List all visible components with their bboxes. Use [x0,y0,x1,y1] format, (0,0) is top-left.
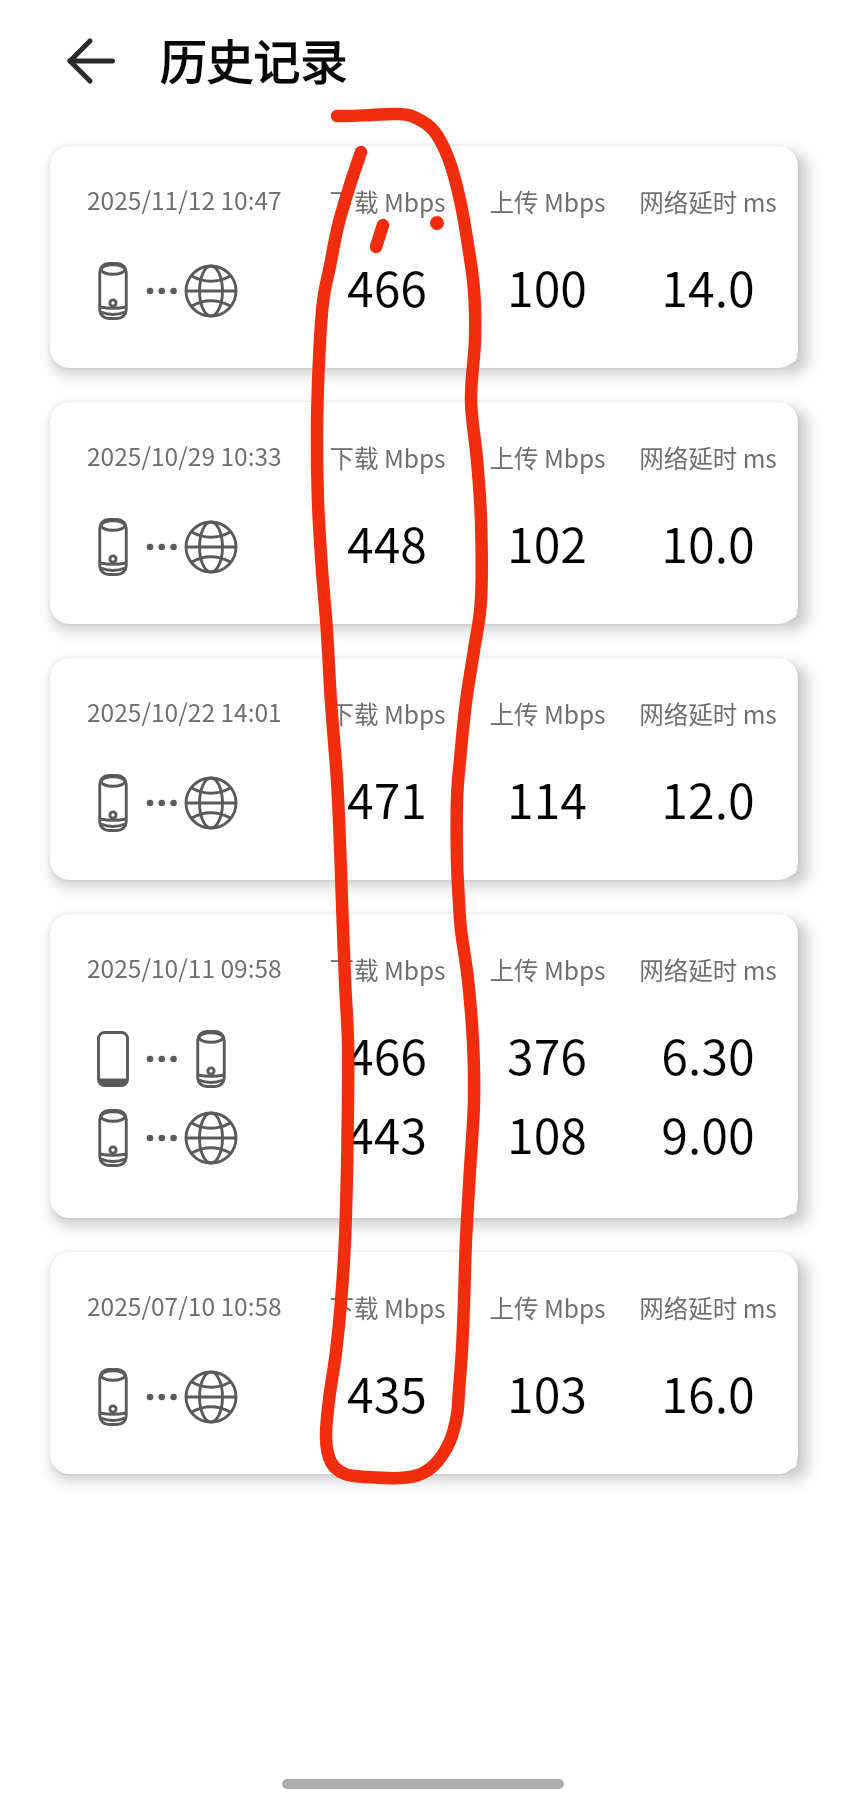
staticText: 108 [507,1098,587,1166]
button[interactable]: 2025/10/22 14:01 [50,658,798,880]
button[interactable]: 2025/10/29 10:33 [50,402,798,624]
staticText: 2025/11/12 10:47 [87,182,282,217]
staticText: 上传 Mbps [489,952,606,987]
staticText: 下载 Mbps [329,952,446,987]
staticText: 上传 Mbps [489,696,606,731]
staticText: 448 [347,507,427,575]
staticText: 443 [347,1098,427,1166]
staticText: 网络延时 ms [639,952,777,987]
staticText: 2025/10/29 10:33 [87,438,282,473]
staticText: 上传 Mbps [489,440,606,475]
staticText: 12.0 [661,763,755,831]
staticText: 9.00 [661,1098,755,1166]
staticText: 114 [507,763,587,831]
staticText: 网络延时 ms [639,184,777,219]
staticText: 435 [347,1357,427,1425]
staticText: 471 [347,763,427,831]
staticText: 上传 Mbps [489,184,606,219]
staticText: 10.0 [661,507,755,575]
button[interactable]: Back [46,30,108,92]
staticText: 16.0 [661,1357,755,1425]
staticText: 466 [347,1019,427,1087]
staticText: 14.0 [661,251,755,319]
staticText: 网络延时 ms [639,1290,777,1325]
staticText: 466 [347,251,427,319]
staticText: 102 [507,507,587,575]
button[interactable]: 历史记录 [160,25,348,91]
staticText: 376 [507,1019,587,1087]
staticText: 上传 Mbps [489,1290,606,1325]
button[interactable]: 2025/10/11 09:58 [50,914,798,1218]
button[interactable]: 2025/11/12 10:47 [50,146,798,368]
staticText: 下载 Mbps [329,440,446,475]
staticText: 网络延时 ms [639,440,777,475]
staticText: 下载 Mbps [329,1290,446,1325]
staticText: 103 [507,1357,587,1425]
staticText: 2025/10/11 09:58 [87,950,282,985]
staticText: 下载 Mbps [329,696,446,731]
button[interactable]: 2025/07/10 10:58 [50,1252,798,1474]
staticText: 2025/07/10 10:58 [87,1288,282,1323]
staticText: 网络延时 ms [639,696,777,731]
staticText: 100 [507,251,587,319]
staticText: 历史记录 [160,25,348,91]
staticText: 下载 Mbps [329,184,446,219]
staticText: 2025/10/22 14:01 [87,694,282,729]
staticText: 6.30 [661,1019,755,1087]
